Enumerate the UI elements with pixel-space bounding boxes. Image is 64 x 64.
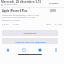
staticText: Sauvegarder xyxy=(23,32,37,35)
staticText: Dernière sauvegarde : hier à 3:05 xyxy=(2,13,40,16)
staticText: 2,6 Go xyxy=(2,23,9,26)
button[interactable]: Sauvegarder xyxy=(2,30,58,36)
staticText: Total xyxy=(46,23,51,26)
button[interactable]: Modifier xyxy=(49,1,59,4)
staticText: 5,1 Go xyxy=(55,23,62,26)
button[interactable]: Météo xyxy=(0,46,16,54)
staticText: Afficher tous les appareils xyxy=(15,40,46,43)
button[interactable]: Plus d'options xyxy=(50,9,56,12)
staticText: Apple iPhone 6 Plus xyxy=(2,9,28,13)
button[interactable]: Profil xyxy=(48,46,64,54)
button[interactable]: Afficher tous les appareils xyxy=(2,38,58,44)
staticText: Modifier xyxy=(49,1,59,4)
button[interactable]: Actualiser xyxy=(16,46,32,54)
staticText: iCloud Drive xyxy=(4,3,18,6)
staticText: Mercredi, 28 décembre 3:15 xyxy=(1,0,42,4)
staticText: 15 Go xyxy=(13,23,19,26)
staticText: Taille de la sauvegarde : 2,6 Go xyxy=(2,16,36,19)
button[interactable]: Accueil xyxy=(32,46,48,54)
staticText: Options : Photos xyxy=(2,19,20,22)
